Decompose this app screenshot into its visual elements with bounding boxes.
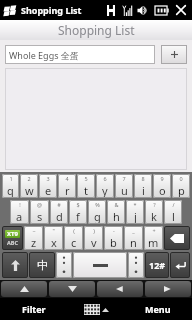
staticText: t: [84, 183, 88, 198]
staticText: 5: [84, 175, 88, 182]
staticText: n: [130, 235, 137, 250]
staticText: Shopping List: [58, 22, 135, 38]
button[interactable]: [5, 68, 187, 170]
button[interactable]: @: [30, 200, 49, 224]
button[interactable]: ): [84, 226, 103, 250]
button[interactable]: XT9 input mode: [2, 226, 23, 250]
staticText: 中: [37, 258, 48, 272]
staticText: d: [56, 209, 63, 224]
staticText: /: [172, 201, 175, 208]
staticText: 7: [122, 175, 126, 182]
staticText: u: [121, 183, 128, 198]
button[interactable]: Left: [97, 281, 143, 297]
button[interactable]: Menu: [124, 298, 192, 320]
button[interactable]: 9: [153, 174, 171, 198]
staticText: k: [151, 209, 157, 224]
staticText: x: [51, 235, 57, 250]
staticText: o: [159, 183, 166, 198]
staticText: (: [73, 227, 75, 234]
staticText: &: [114, 201, 119, 208]
button[interactable]: ~: [24, 226, 43, 250]
staticText: #: [57, 201, 61, 208]
staticText: w: [25, 183, 34, 198]
staticText: %: [95, 201, 100, 208]
button[interactable]: Enter: [170, 252, 190, 278]
staticText: !: [19, 201, 21, 208]
staticText: b: [110, 235, 117, 250]
button[interactable]: *: [126, 200, 144, 224]
button[interactable]: #: [50, 200, 68, 224]
staticText: ): [93, 227, 95, 234]
button[interactable]: Space: [73, 252, 127, 278]
button[interactable]: ": [44, 226, 63, 250]
button[interactable]: Up: [1, 281, 47, 297]
staticText: 2: [27, 175, 31, 182]
staticText: c: [71, 235, 77, 250]
button[interactable]: %: [88, 200, 106, 224]
staticText: e: [45, 183, 52, 198]
staticText: -: [113, 227, 115, 234]
button[interactable]: Shift: [2, 252, 28, 278]
button[interactable]: +: [144, 226, 163, 250]
staticText: z: [31, 235, 37, 250]
staticText: 8: [141, 175, 145, 182]
button[interactable]: (: [64, 226, 83, 250]
staticText: r: [65, 183, 70, 198]
button[interactable]: 2: [20, 174, 38, 198]
button[interactable]: 3: [39, 174, 57, 198]
staticText: m: [148, 235, 159, 250]
staticText: h: [113, 209, 120, 224]
staticText: y: [102, 183, 108, 198]
button[interactable]: Down: [49, 281, 95, 297]
staticText: a: [16, 209, 23, 224]
button[interactable]: 6: [96, 174, 114, 198]
staticText: *: [133, 201, 137, 208]
button[interactable]: Close: [175, 4, 187, 16]
staticText: q: [7, 183, 14, 198]
staticText: 9: [160, 175, 164, 182]
staticText: v: [91, 235, 97, 250]
button[interactable]: Punctuation: [56, 252, 72, 278]
button[interactable]: Right: [145, 281, 191, 297]
staticText: 1: [9, 175, 13, 182]
button[interactable]: _: [124, 226, 143, 250]
button[interactable]: -: [104, 226, 123, 250]
button[interactable]: Filter: [0, 298, 68, 320]
staticText: XT9: [7, 230, 18, 238]
button[interactable]: 8: [134, 174, 152, 198]
staticText: ?: [153, 201, 156, 208]
button[interactable]: 7: [115, 174, 133, 198]
button[interactable]: Show keyboard: [68, 298, 124, 320]
button[interactable]: $: [69, 200, 87, 224]
button[interactable]: 4: [58, 174, 76, 198]
button[interactable]: Chinese input: [29, 252, 55, 278]
button[interactable]: ?: [145, 200, 163, 224]
button[interactable]: 1: [2, 174, 19, 198]
button[interactable]: Add item: [161, 45, 187, 64]
staticText: Whole Eggs 全蛋: [9, 49, 79, 61]
staticText: f: [76, 209, 80, 224]
staticText: $: [76, 201, 80, 208]
staticText: p: [178, 183, 185, 198]
button[interactable]: /: [164, 200, 182, 224]
staticText: 0: [179, 175, 183, 182]
staticText: Menu: [145, 303, 171, 315]
button[interactable]: Whole Eggs 全蛋: [5, 45, 155, 64]
button[interactable]: Backspace: [164, 226, 190, 250]
staticText: @: [37, 201, 42, 208]
staticText: ": [52, 227, 55, 234]
staticText: l: [172, 209, 175, 224]
button[interactable]: 5: [77, 174, 95, 198]
staticText: ABC: [7, 239, 18, 246]
button[interactable]: &: [107, 200, 125, 224]
staticText: i: [142, 183, 145, 198]
button[interactable]: Punctuation: [128, 252, 144, 278]
staticText: 3: [46, 175, 50, 182]
button[interactable]: Numbers and symbols: [145, 252, 169, 278]
button[interactable]: 0: [172, 174, 190, 198]
staticText: Shopping List: [21, 4, 82, 16]
button[interactable]: !: [10, 200, 29, 224]
staticText: 4: [65, 175, 69, 182]
staticText: 6: [103, 175, 107, 182]
staticText: s: [37, 209, 43, 224]
